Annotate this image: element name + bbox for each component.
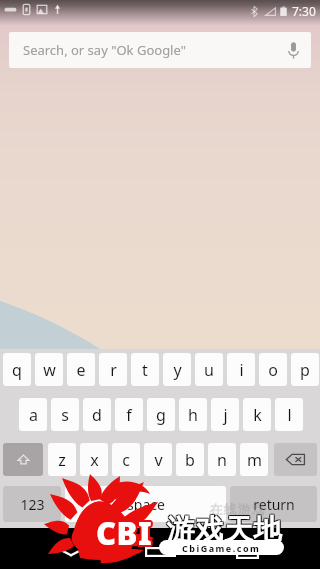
button[interactable]: a: [19, 398, 47, 431]
button[interactable]: return: [230, 486, 317, 522]
button[interactable]: 123: [3, 486, 61, 522]
button[interactable]: f: [115, 398, 143, 431]
staticText: 游戏天地: [167, 512, 283, 547]
other: Voice search: [287, 41, 300, 60]
staticText: h: [188, 404, 198, 426]
staticText: 游戏天地: [166, 512, 282, 547]
button[interactable]: s: [51, 398, 79, 431]
staticText: 游戏天地: [167, 511, 283, 546]
button[interactable]: n: [208, 443, 236, 476]
button[interactable]: r: [99, 353, 127, 386]
button[interactable]: Home: [130, 528, 190, 569]
button[interactable]: Backspace: [274, 443, 317, 476]
staticText: x: [90, 449, 99, 471]
staticText: k: [253, 404, 262, 426]
staticText: CBI: [96, 511, 153, 553]
staticText: a: [29, 404, 38, 426]
staticText: CBI: [96, 512, 153, 554]
button[interactable]: q: [3, 353, 31, 386]
staticText: m: [247, 449, 262, 471]
staticText: CBI: [95, 513, 152, 555]
button[interactable]: d: [83, 398, 111, 431]
staticText: q: [12, 359, 22, 381]
button[interactable]: u: [195, 353, 223, 386]
staticText: d: [92, 404, 102, 426]
button[interactable]: Recent apps: [218, 528, 278, 569]
staticText: CBI: [97, 513, 154, 555]
staticText: CBI: [97, 510, 154, 552]
staticText: n: [217, 449, 227, 471]
button[interactable]: j: [211, 398, 239, 431]
staticText: CBI: [97, 511, 154, 553]
button[interactable]: v: [144, 443, 172, 476]
staticText: f: [126, 404, 132, 426]
staticText: 123: [20, 495, 45, 514]
button[interactable]: Search, or say "Ok Google": [9, 32, 311, 68]
staticText: l: [287, 404, 292, 426]
staticText: u: [204, 359, 214, 381]
button[interactable]: space: [65, 486, 226, 522]
staticText: 7:30: [292, 3, 316, 19]
button[interactable]: y: [163, 353, 191, 386]
button[interactable]: w: [35, 353, 63, 386]
staticText: j: [223, 404, 228, 426]
staticText: CBI: [94, 511, 151, 553]
staticText: g: [156, 404, 166, 426]
button[interactable]: h: [179, 398, 207, 431]
staticText: 游戏天地: [165, 513, 281, 548]
staticText: 游戏天地: [165, 512, 281, 547]
button[interactable]: b: [176, 443, 204, 476]
staticText: b: [185, 449, 195, 471]
button[interactable]: l: [275, 398, 303, 431]
staticText: r: [110, 359, 117, 381]
staticText: CBI: [97, 512, 154, 554]
staticText: v: [154, 449, 163, 471]
staticText: CBI: [96, 513, 153, 555]
button[interactable]: g: [147, 398, 175, 431]
staticText: CbiGame.com: [182, 542, 261, 554]
staticText: y: [173, 359, 182, 381]
staticText: t: [142, 359, 148, 381]
staticText: o: [268, 359, 278, 381]
staticText: CBI: [95, 511, 152, 553]
staticText: CBI: [97, 514, 154, 556]
button[interactable]: z: [48, 443, 76, 476]
staticText: CBI: [98, 513, 155, 555]
staticText: return: [253, 495, 295, 514]
staticText: i: [239, 359, 244, 381]
button[interactable]: Hide keyboard: [45, 528, 97, 569]
staticText: CBI: [98, 511, 155, 553]
button[interactable]: m: [240, 443, 268, 476]
button[interactable]: e: [67, 353, 95, 386]
staticText: 游戏天地: [166, 511, 282, 546]
button[interactable]: k: [243, 398, 271, 431]
staticText: z: [58, 449, 66, 471]
button[interactable]: p: [291, 353, 319, 386]
staticText: w: [43, 359, 56, 381]
staticText: CBI: [94, 513, 151, 555]
staticText: CBI: [96, 512, 153, 554]
staticText: 游戏天地: [165, 511, 281, 546]
staticText: space: [127, 495, 165, 514]
staticText: CBI: [95, 510, 152, 552]
button[interactable]: i: [227, 353, 255, 386]
staticText: CBI: [95, 514, 152, 556]
button[interactable]: x: [80, 443, 108, 476]
staticText: CBI: [98, 512, 155, 554]
staticText: 在线游戏: [209, 501, 265, 517]
staticText: Search, or say "Ok Google": [23, 41, 186, 59]
staticText: c: [122, 449, 130, 471]
staticText: e: [76, 359, 86, 381]
staticText: CBI: [95, 512, 152, 554]
staticText: s: [61, 404, 69, 426]
button[interactable]: t: [131, 353, 159, 386]
button[interactable]: c: [112, 443, 140, 476]
button[interactable]: Shift: [3, 443, 43, 476]
button[interactable]: o: [259, 353, 287, 386]
staticText: CBI: [94, 512, 151, 554]
staticText: CBI: [96, 514, 153, 556]
staticText: p: [300, 359, 310, 381]
staticText: CBI: [96, 510, 153, 552]
staticText: 游戏天地: [167, 513, 283, 548]
staticText: 游戏天地: [166, 513, 282, 548]
